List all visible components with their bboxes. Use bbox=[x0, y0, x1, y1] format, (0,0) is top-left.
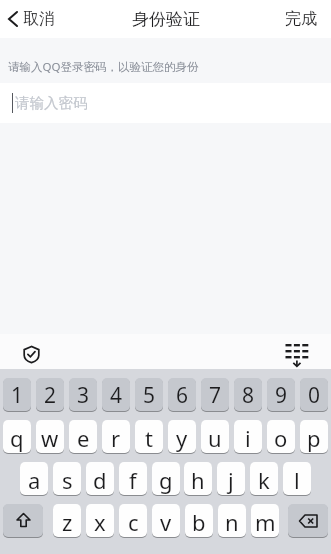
button[interactable]: 取消 bbox=[0, 9, 55, 29]
button[interactable]: x bbox=[86, 504, 114, 537]
button[interactable]: g bbox=[152, 462, 180, 495]
staticText: 完成 bbox=[285, 9, 317, 29]
staticText: 1 bbox=[11, 381, 24, 410]
staticText: p bbox=[307, 423, 321, 453]
staticText: 4 bbox=[110, 381, 123, 410]
button[interactable]: q bbox=[3, 420, 31, 453]
button[interactable]: 5 bbox=[135, 378, 163, 411]
staticText: r bbox=[111, 423, 121, 453]
staticText: 身份验证 bbox=[132, 9, 200, 30]
staticText: 0 bbox=[308, 381, 321, 410]
button[interactable]: f bbox=[119, 462, 147, 495]
button[interactable]: 0 bbox=[300, 378, 328, 411]
staticText: d bbox=[93, 465, 107, 495]
button[interactable]: 6 bbox=[168, 378, 196, 411]
button[interactable]: 完成 bbox=[285, 9, 331, 29]
staticText: 6 bbox=[176, 381, 189, 410]
button[interactable]: s bbox=[53, 462, 81, 495]
staticText: 9 bbox=[275, 381, 288, 410]
button[interactable]: i bbox=[234, 420, 262, 453]
staticText: c bbox=[128, 507, 139, 537]
button[interactable]: 3 bbox=[69, 378, 97, 411]
button[interactable]: c bbox=[119, 504, 147, 537]
button[interactable]: d bbox=[86, 462, 114, 495]
staticText: n bbox=[225, 507, 239, 537]
button[interactable]: v bbox=[152, 504, 180, 537]
staticText: 3 bbox=[77, 381, 90, 410]
button[interactable]: e bbox=[69, 420, 97, 453]
button[interactable]: m bbox=[251, 504, 279, 537]
button[interactable]: p bbox=[300, 420, 328, 453]
button[interactable] bbox=[288, 504, 328, 537]
button[interactable]: z bbox=[53, 504, 81, 537]
button[interactable] bbox=[285, 343, 309, 367]
button[interactable]: n bbox=[218, 504, 246, 537]
staticText: f bbox=[129, 465, 137, 495]
staticText: s bbox=[62, 465, 73, 495]
button[interactable]: w bbox=[36, 420, 64, 453]
staticText: 7 bbox=[209, 381, 222, 410]
staticText: h bbox=[191, 465, 205, 495]
staticText: 取消 bbox=[23, 9, 55, 29]
staticText: 请输入密码 bbox=[15, 94, 88, 112]
staticText: u bbox=[208, 423, 222, 453]
staticText: y bbox=[176, 423, 188, 453]
button[interactable]: r bbox=[102, 420, 130, 453]
button[interactable]: t bbox=[135, 420, 163, 453]
staticText: o bbox=[274, 423, 288, 453]
button[interactable] bbox=[22, 345, 41, 364]
staticText: m bbox=[255, 507, 276, 537]
button[interactable]: 1 bbox=[3, 378, 31, 411]
button[interactable]: h bbox=[184, 462, 212, 495]
button[interactable]: 8 bbox=[234, 378, 262, 411]
staticText: q bbox=[10, 423, 24, 453]
staticText: 8 bbox=[242, 381, 255, 410]
staticText: z bbox=[62, 507, 73, 537]
staticText: j bbox=[228, 465, 234, 495]
staticText: 5 bbox=[143, 381, 156, 410]
button[interactable]: 7 bbox=[201, 378, 229, 411]
staticText: a bbox=[28, 465, 41, 495]
button[interactable]: b bbox=[185, 504, 213, 537]
button[interactable] bbox=[3, 504, 43, 537]
staticText: e bbox=[77, 423, 90, 453]
button[interactable]: 9 bbox=[267, 378, 295, 411]
button[interactable]: 2 bbox=[36, 378, 64, 411]
button[interactable]: y bbox=[168, 420, 196, 453]
button[interactable]: 请输入密码 bbox=[0, 83, 331, 123]
button[interactable]: 4 bbox=[102, 378, 130, 411]
staticText: v bbox=[160, 507, 172, 537]
button[interactable]: u bbox=[201, 420, 229, 453]
staticText: 2 bbox=[44, 381, 57, 410]
staticText: x bbox=[94, 507, 106, 537]
button[interactable]: j bbox=[217, 462, 245, 495]
staticText: l bbox=[294, 465, 300, 495]
staticText: w bbox=[41, 423, 59, 453]
button[interactable]: o bbox=[267, 420, 295, 453]
button[interactable]: k bbox=[250, 462, 278, 495]
staticText: k bbox=[258, 465, 270, 495]
staticText: b bbox=[192, 507, 206, 537]
button[interactable]: l bbox=[283, 462, 311, 495]
staticText: t bbox=[145, 423, 153, 453]
staticText: g bbox=[159, 465, 173, 495]
staticText: i bbox=[245, 423, 251, 453]
button[interactable]: a bbox=[20, 462, 48, 495]
staticText: 请输入QQ登录密码，以验证您的身份 bbox=[8, 59, 199, 75]
